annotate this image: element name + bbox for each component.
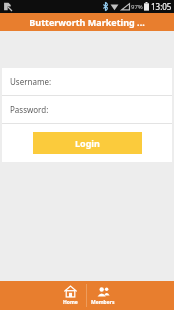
- button[interactable]: Login: [33, 132, 142, 154]
- staticText: Home: [63, 299, 78, 306]
- staticText: 13:05: [151, 1, 172, 12]
- other: Members: [97, 285, 110, 298]
- staticText: 97%: [131, 3, 143, 11]
- staticText: Password:: [10, 104, 49, 115]
- staticText: Username:: [10, 76, 52, 87]
- staticText: Members: [91, 299, 115, 306]
- other: Home: [64, 285, 77, 298]
- button[interactable]: Members: [87, 281, 119, 310]
- staticText: Butterworth Marketing ...: [29, 16, 145, 28]
- staticText: Login: [75, 137, 100, 149]
- button[interactable]: Username:: [2, 68, 172, 95]
- button[interactable]: Password:: [2, 96, 172, 123]
- button[interactable]: Home: [54, 281, 86, 310]
